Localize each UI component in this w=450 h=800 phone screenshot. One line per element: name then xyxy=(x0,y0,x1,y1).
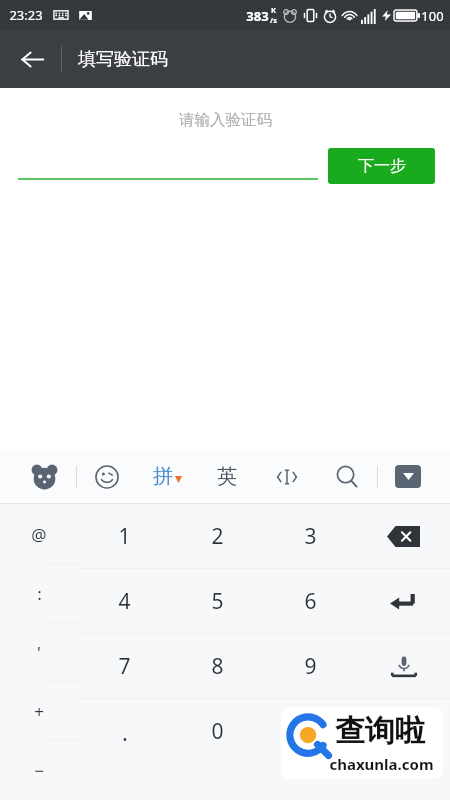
button[interactable]: Search xyxy=(317,450,377,503)
button[interactable]: Hide keyboard xyxy=(378,450,438,503)
button[interactable]: 9 xyxy=(264,634,357,699)
button[interactable]: 6 xyxy=(264,569,357,634)
button[interactable]: ' xyxy=(0,623,78,682)
staticText: 拼 xyxy=(153,464,173,489)
staticText: 1 xyxy=(118,522,131,551)
staticText: 2 xyxy=(211,522,224,551)
staticText: . xyxy=(122,717,128,747)
staticText: 23:23 xyxy=(9,6,43,24)
staticText: 0 xyxy=(211,717,224,746)
other: Voice input xyxy=(390,654,418,680)
staticText: @ xyxy=(31,523,47,546)
button[interactable]: : xyxy=(0,564,78,623)
button[interactable]: 2 xyxy=(171,504,264,569)
staticText: : xyxy=(37,582,42,605)
button[interactable]: 7 xyxy=(78,634,171,699)
staticText: 查询啦 xyxy=(335,712,425,750)
button[interactable]: 拼 xyxy=(137,450,197,503)
button[interactable]: Enter xyxy=(357,569,450,634)
staticText: 请输入验证码 xyxy=(179,110,272,130)
button[interactable]: @ xyxy=(0,504,78,564)
button[interactable]: 8 xyxy=(171,634,264,699)
staticText: 6 xyxy=(304,587,317,616)
staticText: 4 xyxy=(118,587,131,616)
button[interactable]: + xyxy=(0,682,78,741)
button[interactable]: 5 xyxy=(171,569,264,634)
button[interactable]: 英 xyxy=(197,450,257,503)
button[interactable]: Emoji xyxy=(77,450,137,503)
button[interactable]: . xyxy=(78,699,171,800)
staticText: + xyxy=(34,700,44,723)
staticText: 8 xyxy=(211,652,224,681)
staticText: 383 xyxy=(246,7,269,25)
staticText: 5 xyxy=(211,587,224,616)
staticText: K xyxy=(271,5,276,15)
staticText: − xyxy=(34,759,44,782)
button[interactable]: Cursor xyxy=(257,450,317,503)
other: Delete xyxy=(387,526,420,547)
staticText: ' xyxy=(37,641,41,664)
other: Enter xyxy=(390,592,417,612)
staticText: 3 xyxy=(304,522,317,551)
button[interactable]: − xyxy=(0,741,78,800)
button[interactable]: Voice input xyxy=(357,634,450,699)
staticText: /s xyxy=(270,15,277,25)
staticText: 英 xyxy=(217,464,237,489)
button[interactable]: Panda keyboard xyxy=(12,450,76,503)
staticText: 下一步 xyxy=(358,156,406,176)
button[interactable]: Back xyxy=(8,35,56,83)
staticText: chaxunla.com xyxy=(329,754,434,774)
button[interactable] xyxy=(264,699,357,800)
button[interactable]: Delete xyxy=(357,504,450,569)
staticText: 9 xyxy=(304,652,317,681)
staticText: 7 xyxy=(118,652,131,681)
button[interactable]: 0 xyxy=(171,699,264,800)
button[interactable]: 下一步 xyxy=(328,148,435,184)
button[interactable]: 4 xyxy=(78,569,171,634)
button[interactable] xyxy=(357,699,450,800)
staticText: 填写验证码 xyxy=(78,48,168,71)
staticText: 100 xyxy=(421,7,444,25)
button[interactable]: 1 xyxy=(78,504,171,569)
button[interactable]: 3 xyxy=(264,504,357,569)
